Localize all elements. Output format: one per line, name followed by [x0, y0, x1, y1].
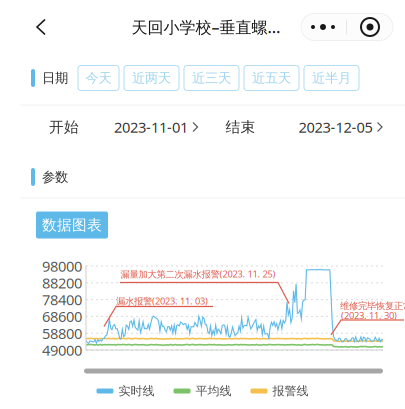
staticText: 58800 [42, 323, 82, 343]
staticText: 68600 [42, 307, 82, 326]
staticText: 开始 [49, 118, 79, 136]
staticText: 49000 [42, 340, 82, 360]
button[interactable]: 近三天 [184, 65, 239, 90]
button[interactable]: 数据图表 [36, 211, 108, 238]
staticText: 平均线 [195, 384, 231, 398]
staticText: 2023-11-01 [114, 117, 188, 137]
staticText: 漏水报警(2023. 11. 03) [116, 295, 208, 307]
staticText: 结束 [225, 118, 255, 136]
staticText: 2023-12-05 [298, 117, 372, 137]
staticText: 近五天 [252, 70, 291, 86]
staticText: 88200 [42, 273, 82, 293]
staticText: 近两天 [132, 70, 171, 86]
staticText: 数据图表 [42, 216, 102, 234]
staticText: 实时线 [118, 384, 154, 398]
staticText: 日期 [42, 70, 68, 86]
button[interactable]: Close [348, 13, 392, 40]
staticText: (2023. 11. 30) [341, 309, 397, 322]
staticText: 天回小学校–垂直螺… [131, 16, 280, 38]
staticText: 98000 [42, 256, 82, 276]
button[interactable]: 近两天 [124, 65, 179, 90]
staticText: 78400 [42, 290, 82, 309]
button[interactable]: More [301, 13, 345, 40]
staticText: 维修完毕恢复正常 [340, 300, 405, 312]
staticText: 今天 [85, 70, 111, 86]
staticText: 近半月 [312, 70, 351, 86]
button[interactable]: 今天 [78, 65, 119, 90]
staticText: 参数 [42, 169, 68, 185]
staticText: 近三天 [192, 70, 231, 86]
staticText: 报警线 [272, 384, 308, 398]
button[interactable]: 开始 [49, 105, 197, 149]
button[interactable]: 近半月 [304, 65, 359, 90]
button[interactable]: 结束 [225, 105, 382, 149]
button[interactable]: 近五天 [244, 65, 299, 90]
button[interactable]: Back [19, 5, 63, 49]
staticText: 漏量加大第二次漏水报警(2023. 11. 25) [120, 268, 275, 280]
